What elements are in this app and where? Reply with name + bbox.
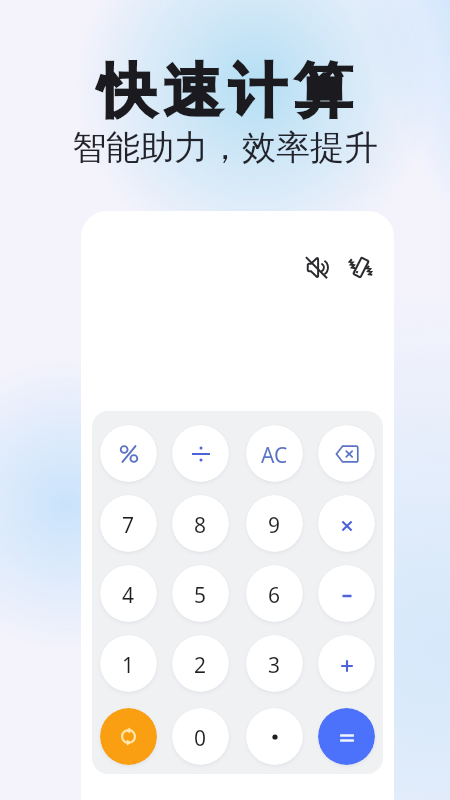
button[interactable]: 5 bbox=[172, 565, 229, 622]
button[interactable]: Backspace bbox=[318, 425, 375, 482]
staticText: 8 bbox=[194, 511, 207, 540]
staticText: 快速计算 bbox=[94, 55, 356, 128]
button[interactable]: Multiply bbox=[318, 495, 375, 552]
button[interactable]: Divide bbox=[172, 425, 229, 482]
button[interactable]: AC bbox=[246, 425, 303, 482]
staticText: 9 bbox=[268, 511, 281, 540]
button[interactable]: Equals bbox=[318, 708, 375, 765]
staticText: 3 bbox=[268, 651, 281, 680]
staticText: AC bbox=[261, 441, 288, 470]
button[interactable]: Plus bbox=[318, 635, 375, 692]
button[interactable]: 6 bbox=[246, 565, 303, 622]
button[interactable]: 4 bbox=[100, 565, 157, 622]
button[interactable]: 9 bbox=[246, 495, 303, 552]
button[interactable]: 3 bbox=[246, 635, 303, 692]
button[interactable]: Vibrate bbox=[344, 251, 376, 283]
staticText: 1 bbox=[122, 651, 135, 680]
button[interactable]: 2 bbox=[172, 635, 229, 692]
staticText: 4 bbox=[122, 581, 135, 610]
staticText: 5 bbox=[194, 581, 207, 610]
button[interactable]: Percent bbox=[100, 425, 157, 482]
staticText: 0 bbox=[194, 724, 207, 753]
button[interactable]: History bbox=[100, 708, 157, 765]
staticText: 7 bbox=[122, 511, 135, 540]
button[interactable]: 0 bbox=[172, 708, 229, 765]
button[interactable]: Minus bbox=[318, 565, 375, 622]
button[interactable]: Mute sound bbox=[300, 251, 332, 283]
staticText: 6 bbox=[268, 581, 281, 610]
button[interactable]: 8 bbox=[172, 495, 229, 552]
button[interactable]: 1 bbox=[100, 635, 157, 692]
button[interactable]: 7 bbox=[100, 495, 157, 552]
staticText: 智能助力，效率提升 bbox=[72, 126, 378, 169]
button[interactable]: Decimal point bbox=[246, 708, 303, 765]
staticText: 2 bbox=[194, 651, 207, 680]
